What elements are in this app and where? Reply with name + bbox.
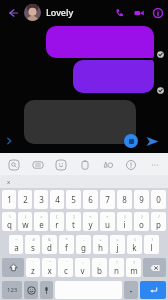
button[interactable]: Message input [24,100,136,144]
button[interactable]: + [93,235,108,254]
button[interactable]: Stickers [51,155,70,174]
staticText: ) [151,237,153,242]
staticText: [ [56,214,58,219]
staticText: 4 [55,194,60,205]
button[interactable]: } [134,212,149,231]
button[interactable]: / [151,212,166,231]
staticText: l [150,242,153,253]
staticText: i [123,219,126,230]
staticText: d [47,242,52,253]
staticText: } [141,214,143,219]
staticText: " [49,260,51,265]
button[interactable]: Expand actions [2,134,16,148]
staticText: n [114,265,119,276]
button[interactable]: GIF [28,155,47,174]
button[interactable]: 3 [34,190,48,209]
staticText: # [32,237,35,242]
button[interactable]: Back [4,4,21,21]
button[interactable]: ) [144,235,159,254]
button[interactable]: 7 [100,190,115,209]
staticText: u [105,219,110,230]
button[interactable]: Send [143,132,161,150]
button[interactable]: 9 [134,190,149,209]
button[interactable]: # [25,235,40,254]
button[interactable]: = [110,235,125,254]
staticText: 123 [7,286,18,294]
button[interactable]: = [34,212,48,231]
button[interactable]: ] [66,212,81,231]
staticText: y [88,219,93,230]
button[interactable]: Voice input [40,281,53,299]
button[interactable]: Period [124,281,138,299]
button[interactable]: > [100,212,115,231]
button[interactable]: Call [110,3,129,22]
staticText: ' [66,260,67,265]
button[interactable]: [ [50,212,64,231]
staticText: e [39,219,44,230]
button[interactable]: Profile photo [24,4,41,21]
button[interactable]: ? [126,258,141,277]
button[interactable]: < [83,212,98,231]
button[interactable]: ! [109,258,124,277]
button[interactable]: | [18,212,32,231]
button[interactable]: Close suggestions [4,177,13,186]
staticText: = [40,214,43,219]
button[interactable]: Emoji [24,281,38,299]
staticText: v [80,265,85,276]
staticText: h [98,242,103,253]
button[interactable]: ( [127,235,142,254]
button[interactable]: Backspace [143,258,166,277]
staticText: * [65,237,68,242]
staticText: 8 [122,194,127,205]
button[interactable]: Translate [98,155,117,174]
staticText: g [81,242,86,253]
button[interactable]: Search [4,155,23,174]
staticText: | [24,214,27,219]
button[interactable]: * [59,235,74,254]
staticText: x [47,265,52,276]
button[interactable]: { [117,212,132,231]
staticText: t [72,219,75,230]
staticText: p [156,219,161,230]
button[interactable]: ` [26,258,40,277]
button[interactable]: : [75,258,90,277]
button[interactable]: ; [92,258,107,277]
staticText: < [89,214,92,219]
staticText: s [31,242,35,253]
staticText: q [7,219,12,230]
button[interactable]: Settings [121,155,140,174]
button[interactable]: Sent message [73,60,154,93]
staticText: z [31,265,35,276]
button[interactable]: Camera [124,134,138,148]
button[interactable]: 0 [151,190,166,209]
staticText: m [130,265,138,276]
button[interactable]: & [42,235,57,254]
button[interactable]: 123 [2,281,22,299]
staticText: 7 [105,194,110,205]
button[interactable]: Conversation info [148,3,167,22]
button[interactable]: 1 [2,190,16,209]
button[interactable]: Lovely [46,6,74,18]
button[interactable]: 8 [117,190,132,209]
staticText: 6 [88,194,93,205]
button[interactable]: 4 [50,190,64,209]
staticText: \ [9,214,11,219]
button[interactable]: Video call [129,3,148,22]
button[interactable]: ~ [9,235,23,254]
button[interactable]: More options [145,155,164,174]
button[interactable]: \ [2,212,16,231]
button[interactable]: Shift [2,258,24,277]
button[interactable]: 6 [83,190,98,209]
button[interactable]: ' [58,258,73,277]
button[interactable]: Enter [140,281,166,299]
button[interactable]: Clipboard [75,155,94,174]
button[interactable]: 5 [66,190,81,209]
button[interactable]: " [42,258,56,277]
button[interactable]: Sent message [46,26,154,58]
staticText: ! [116,260,118,265]
button[interactable]: 2 [18,190,32,209]
button[interactable]: - [76,235,91,254]
staticText: + [99,237,102,242]
staticText: > [106,214,109,219]
